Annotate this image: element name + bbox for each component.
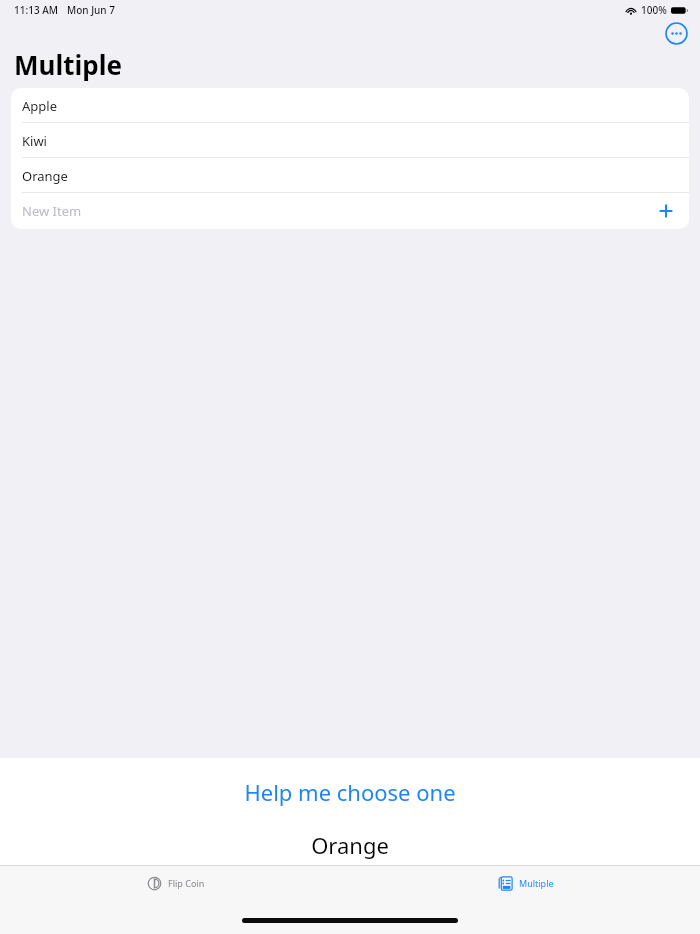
button[interactable]: More options xyxy=(665,22,688,45)
button[interactable]: Flip Coin xyxy=(145,874,205,892)
button[interactable]: Multiple xyxy=(496,874,554,892)
staticText: 100% xyxy=(641,3,667,17)
staticText: Multiple xyxy=(14,47,122,82)
staticText: Orange xyxy=(311,830,389,860)
button[interactable]: New Item xyxy=(11,193,689,229)
button[interactable]: Apple xyxy=(11,88,689,123)
staticText: New Item xyxy=(22,202,82,220)
button[interactable]: Help me choose one xyxy=(0,775,700,809)
staticText: Kiwi xyxy=(22,132,47,150)
button[interactable]: Orange xyxy=(11,158,689,193)
staticText: Multiple xyxy=(519,877,554,889)
staticText: 11:13 AM xyxy=(14,3,58,17)
staticText: Flip Coin xyxy=(168,877,205,889)
staticText: Apple xyxy=(22,97,57,115)
button[interactable]: Kiwi xyxy=(11,123,689,158)
staticText: Mon Jun 7 xyxy=(67,3,115,17)
staticText: Help me choose one xyxy=(244,777,456,807)
staticText: Orange xyxy=(22,167,68,185)
button[interactable]: Add item xyxy=(655,200,677,222)
